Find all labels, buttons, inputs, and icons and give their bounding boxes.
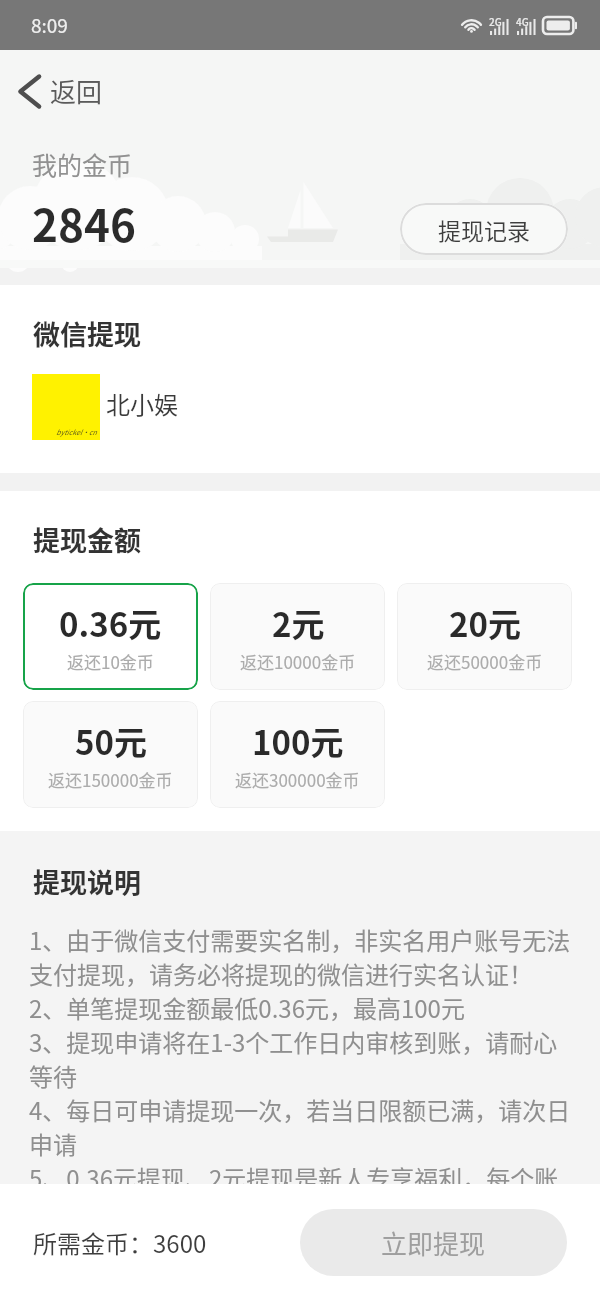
staticText: 北小娱 xyxy=(106,386,178,421)
button[interactable]: 提现记录 xyxy=(400,203,568,255)
staticText: bytickel·cn xyxy=(56,427,97,437)
staticText: 提现金额 xyxy=(33,520,141,559)
button[interactable]: 100元 xyxy=(210,701,385,808)
staticText: 返还10000金币 xyxy=(240,649,356,674)
staticText: 返还150000金币 xyxy=(48,767,173,792)
button[interactable]: Back xyxy=(0,50,600,132)
staticText: 返还300000金币 xyxy=(235,767,360,792)
staticText: 1、由于微信支付需要实名制，非实名用户账号无法支付提现，请务必将提现的微信进行实… xyxy=(29,922,574,1184)
button[interactable]: 2元 xyxy=(210,583,385,690)
staticText: 2元 xyxy=(272,599,325,647)
staticText: 4G xyxy=(516,14,529,28)
staticText: 0.36元 xyxy=(59,599,162,647)
button[interactable]: 20元 xyxy=(397,583,572,690)
staticText: 返还10金币 xyxy=(67,649,154,674)
staticText: 50元 xyxy=(75,717,147,765)
staticText: 提现说明 xyxy=(33,862,141,901)
staticText: 立即提现 xyxy=(381,1224,486,1262)
staticText: 所需金币：3600 xyxy=(33,1225,207,1260)
other: Back xyxy=(18,72,42,111)
staticText: 8:09 xyxy=(31,11,68,39)
staticText: 微信提现 xyxy=(33,314,141,353)
staticText: 2846 xyxy=(32,191,136,255)
staticText: 提现记录 xyxy=(438,213,530,246)
staticText: 我的金币 xyxy=(32,146,133,182)
button[interactable]: bytickel·cn xyxy=(32,374,178,440)
staticText: 返回 xyxy=(50,72,103,110)
button[interactable]: 立即提现 xyxy=(300,1209,567,1276)
staticText: 20元 xyxy=(449,599,521,647)
staticText: 100元 xyxy=(252,717,344,765)
button[interactable]: 0.36元 xyxy=(23,583,198,690)
button[interactable]: 50元 xyxy=(23,701,198,808)
staticText: 2G xyxy=(489,14,502,28)
staticText: 返还50000金币 xyxy=(427,649,543,674)
